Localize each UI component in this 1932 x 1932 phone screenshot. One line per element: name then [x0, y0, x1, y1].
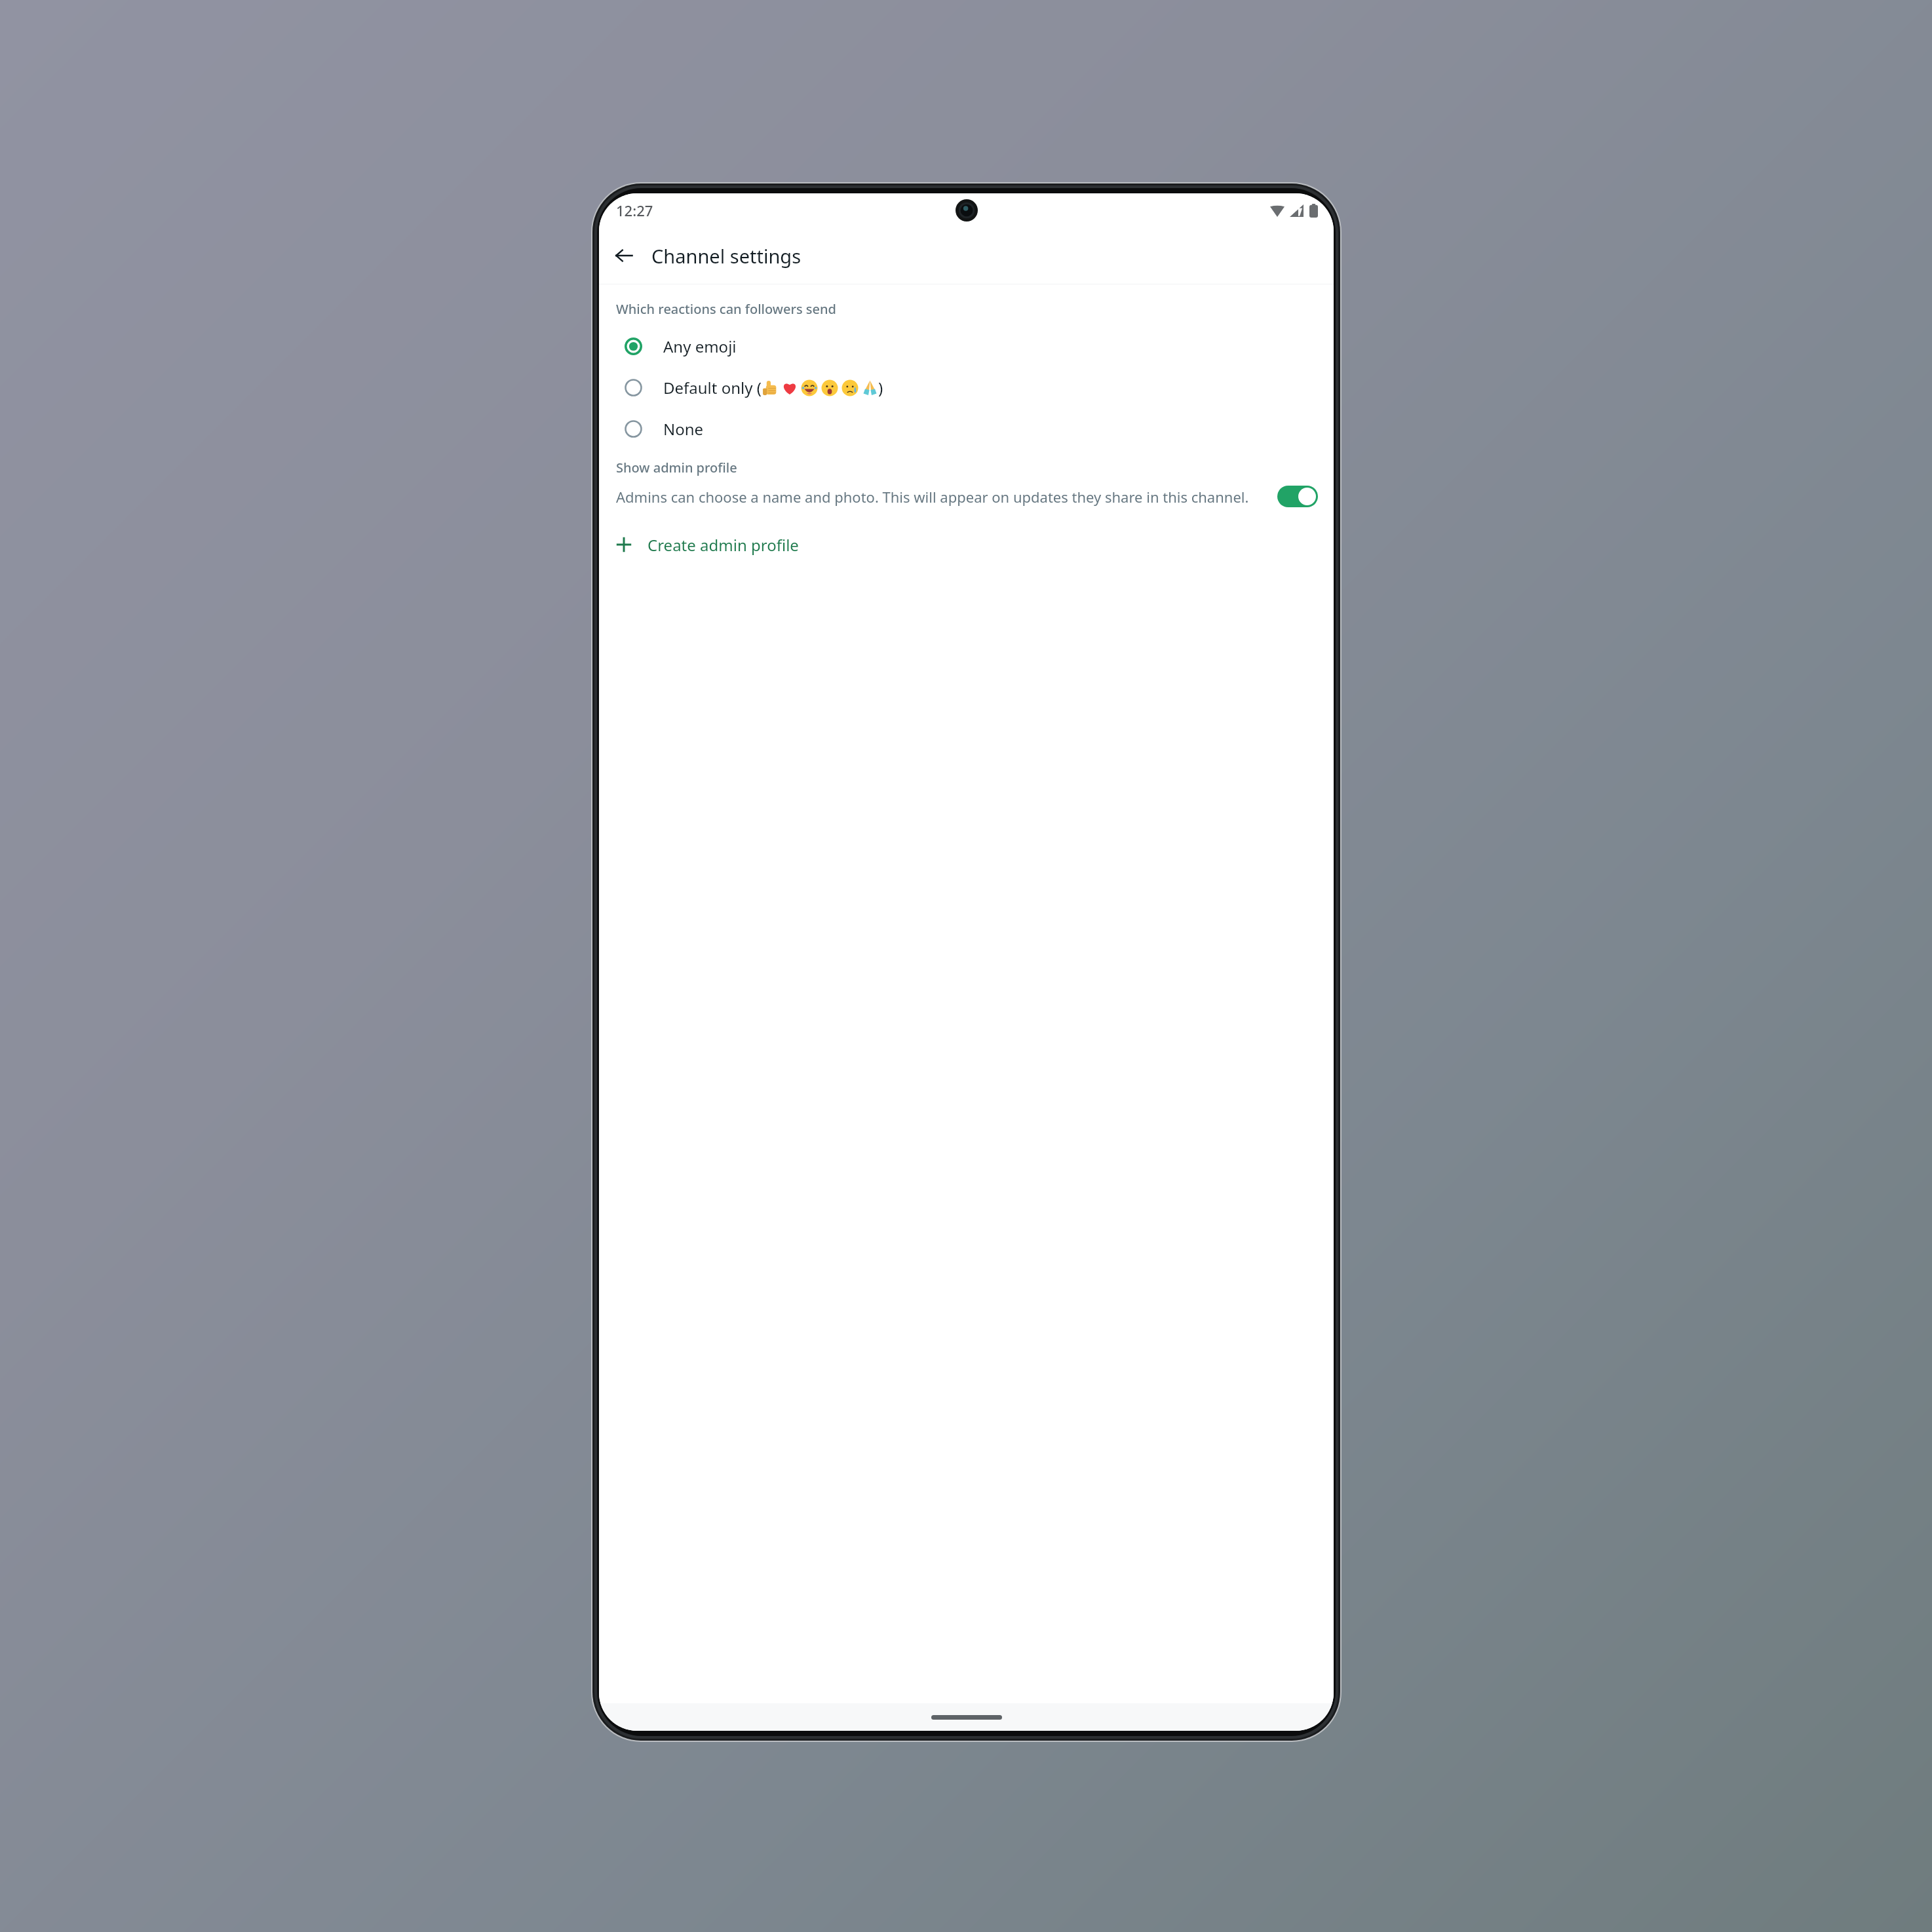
button[interactable]: Admins can choose a name and photo. This… [599, 486, 1334, 507]
staticText: ) [878, 377, 883, 398]
button[interactable]: Back [606, 237, 642, 274]
staticText: Default only ( [663, 377, 762, 398]
button[interactable]: Any emoji [599, 326, 1334, 367]
staticText: Admins can choose a name and photo. This… [616, 487, 1264, 507]
staticText: None [663, 418, 704, 440]
button[interactable]: None [599, 408, 1334, 450]
staticText: Channel settings [651, 243, 802, 269]
staticText: Which reactions can followers send [616, 300, 836, 318]
staticText: 12:27 [616, 201, 653, 220]
staticText: Create admin profile [647, 534, 799, 556]
button[interactable]: Show admin profile toggle [1277, 486, 1318, 507]
button[interactable]: Default only ( [599, 367, 1334, 408]
button[interactable]: Create admin profile [599, 524, 1334, 565]
staticText: Any emoji [663, 336, 737, 357]
staticText: Show admin profile [616, 459, 737, 476]
